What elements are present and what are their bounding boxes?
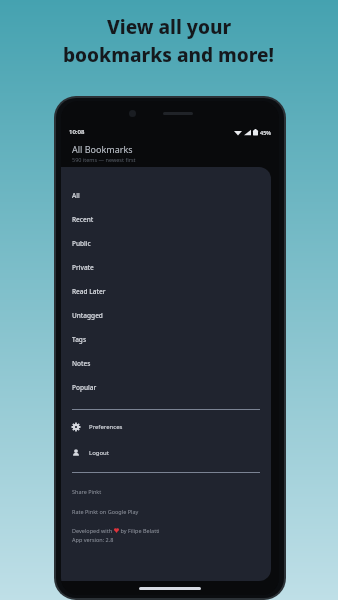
staticText: 45%: [260, 129, 271, 136]
staticText: Logout: [89, 449, 109, 457]
button[interactable]: Notes: [61, 351, 271, 375]
staticText: Read Later: [72, 287, 106, 296]
staticText: 10:08: [69, 128, 85, 136]
button[interactable]: Share Pinkt: [61, 483, 271, 499]
staticText: App version: 2.8: [72, 536, 114, 543]
staticText: bookmarks and more!: [63, 42, 275, 68]
staticText: Tags: [72, 335, 87, 344]
staticText: 590 items — newest first: [72, 156, 136, 163]
button[interactable]: Logout: [61, 443, 271, 463]
staticText: Notes: [72, 359, 91, 368]
button[interactable]: Popular: [61, 375, 271, 399]
button[interactable]: Rate Pinkt on Google Play: [61, 503, 271, 519]
button[interactable]: Untagged: [61, 303, 271, 327]
button[interactable]: Public: [61, 231, 271, 255]
staticText: Popular: [72, 383, 97, 392]
staticText: by Filipe Belatti: [119, 527, 160, 534]
staticText: All: [72, 191, 80, 200]
staticText: Share Pinkt: [72, 488, 102, 495]
staticText: Private: [72, 263, 94, 272]
staticText: Untagged: [72, 311, 103, 320]
button[interactable]: Tags: [61, 327, 271, 351]
button[interactable]: Recent: [61, 207, 271, 231]
staticText: Public: [72, 239, 91, 248]
staticText: Preferences: [89, 423, 123, 431]
button[interactable]: All: [61, 183, 271, 207]
button[interactable]: Read Later: [61, 279, 271, 303]
button[interactable]: Preferences: [61, 417, 271, 437]
staticText: View all your: [107, 14, 232, 40]
staticText: Recent: [72, 215, 94, 224]
button[interactable]: Private: [61, 255, 271, 279]
staticText: Rate Pinkt on Google Play: [72, 508, 139, 515]
staticText: Developed with: [72, 527, 114, 534]
staticText: All Bookmarks: [72, 143, 133, 155]
